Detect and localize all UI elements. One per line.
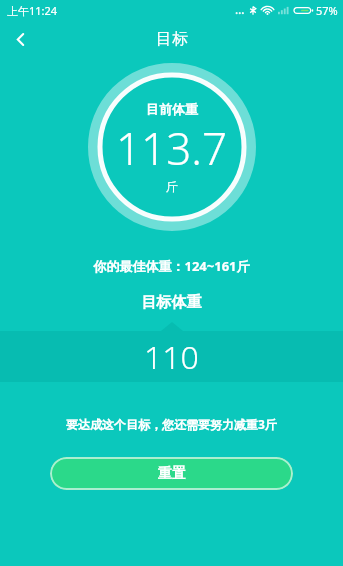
staticText: 110 xyxy=(144,335,199,379)
staticText: 重置 xyxy=(158,465,186,483)
staticText: 目标 xyxy=(156,29,188,49)
staticText: 斤 xyxy=(166,179,178,194)
staticText: 113.7 xyxy=(116,118,228,178)
button[interactable]: 110 xyxy=(0,331,343,382)
staticText: 目标体重 xyxy=(0,293,343,312)
staticText: 上午11:24 xyxy=(7,3,58,18)
staticText: 目前体重 xyxy=(146,101,198,117)
staticText: 要达成这个目标，您还需要努力减重3斤 xyxy=(0,416,343,432)
staticText: 你的最佳体重：124~161斤 xyxy=(0,257,343,275)
staticText: 57% xyxy=(316,3,338,18)
button[interactable]: Back xyxy=(0,20,40,58)
button[interactable]: 重置 xyxy=(50,457,293,490)
